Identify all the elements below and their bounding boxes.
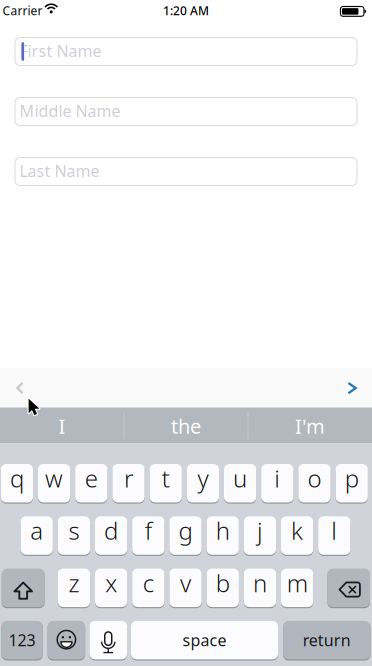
- button[interactable]: g: [169, 516, 202, 555]
- staticText: i: [274, 462, 280, 494]
- button[interactable]: r: [112, 464, 145, 502]
- staticText: z: [68, 567, 79, 599]
- button[interactable]: Previous field: [2, 373, 32, 403]
- button[interactable]: Last Name: [15, 157, 357, 185]
- button[interactable]: Next field: [337, 373, 367, 403]
- staticText: v: [180, 567, 191, 599]
- button[interactable]: a: [21, 516, 53, 555]
- staticText: u: [233, 462, 247, 494]
- button[interactable]: p: [336, 464, 368, 502]
- staticText: q: [10, 462, 24, 494]
- staticText: n: [253, 567, 267, 599]
- button[interactable]: Emoji: [48, 621, 85, 659]
- button[interactable]: 123: [1, 621, 43, 659]
- staticText: p: [345, 462, 359, 494]
- button[interactable]: space: [131, 621, 278, 659]
- button[interactable]: t: [150, 464, 182, 502]
- button[interactable]: l: [318, 516, 350, 555]
- staticText: space: [182, 629, 226, 651]
- button[interactable]: Shift: [2, 569, 45, 607]
- button[interactable]: y: [187, 464, 219, 502]
- button[interactable]: n: [244, 569, 276, 607]
- staticText: I: [58, 413, 65, 439]
- button[interactable]: q: [1, 464, 33, 502]
- staticText: 123: [9, 629, 36, 651]
- staticText: g: [178, 515, 192, 546]
- button[interactable]: j: [244, 516, 276, 555]
- staticText: c: [143, 567, 154, 599]
- button[interactable]: Delete: [327, 569, 370, 607]
- staticText: r: [124, 462, 133, 494]
- staticText: First Name: [19, 40, 101, 61]
- button[interactable]: b: [207, 569, 239, 607]
- staticText: d: [104, 515, 118, 546]
- staticText: l: [331, 515, 337, 546]
- button[interactable]: x: [95, 569, 127, 607]
- staticText: Carrier: [2, 2, 42, 18]
- button[interactable]: First Name: [15, 37, 357, 65]
- button[interactable]: s: [58, 516, 90, 555]
- staticText: s: [68, 515, 79, 546]
- button[interactable]: I: [1, 409, 123, 443]
- staticText: Last Name: [19, 160, 99, 181]
- staticText: j: [257, 515, 263, 546]
- button[interactable]: k: [281, 516, 313, 555]
- button[interactable]: Middle Name: [15, 97, 357, 125]
- button[interactable]: m: [281, 569, 313, 607]
- button[interactable]: c: [132, 569, 164, 607]
- staticText: b: [216, 567, 230, 599]
- button[interactable]: i: [261, 464, 293, 502]
- button[interactable]: d: [95, 516, 127, 555]
- button[interactable]: e: [75, 464, 107, 502]
- button[interactable]: w: [38, 464, 70, 502]
- button[interactable]: u: [224, 464, 256, 502]
- button[interactable]: z: [58, 569, 90, 607]
- button[interactable]: the: [125, 409, 247, 443]
- staticText: a: [30, 515, 43, 546]
- staticText: m: [287, 567, 308, 599]
- staticText: the: [171, 413, 201, 439]
- staticText: 1:20 AM: [163, 2, 209, 18]
- staticText: y: [197, 462, 208, 494]
- button[interactable]: v: [169, 569, 202, 607]
- staticText: h: [216, 515, 230, 546]
- staticText: x: [105, 567, 117, 599]
- button[interactable]: Dictate: [89, 621, 127, 659]
- button[interactable]: I'm: [249, 409, 371, 443]
- staticText: k: [291, 515, 303, 546]
- staticText: t: [162, 462, 170, 494]
- staticText: Middle Name: [19, 100, 120, 121]
- button[interactable]: o: [298, 464, 331, 502]
- staticText: o: [307, 462, 321, 494]
- staticText: return: [303, 629, 351, 651]
- button[interactable]: f: [132, 516, 164, 555]
- button[interactable]: h: [207, 516, 239, 555]
- staticText: f: [145, 515, 152, 546]
- staticText: I'm: [295, 413, 325, 439]
- staticText: w: [45, 462, 63, 494]
- button[interactable]: return: [283, 621, 370, 659]
- staticText: e: [85, 462, 98, 494]
